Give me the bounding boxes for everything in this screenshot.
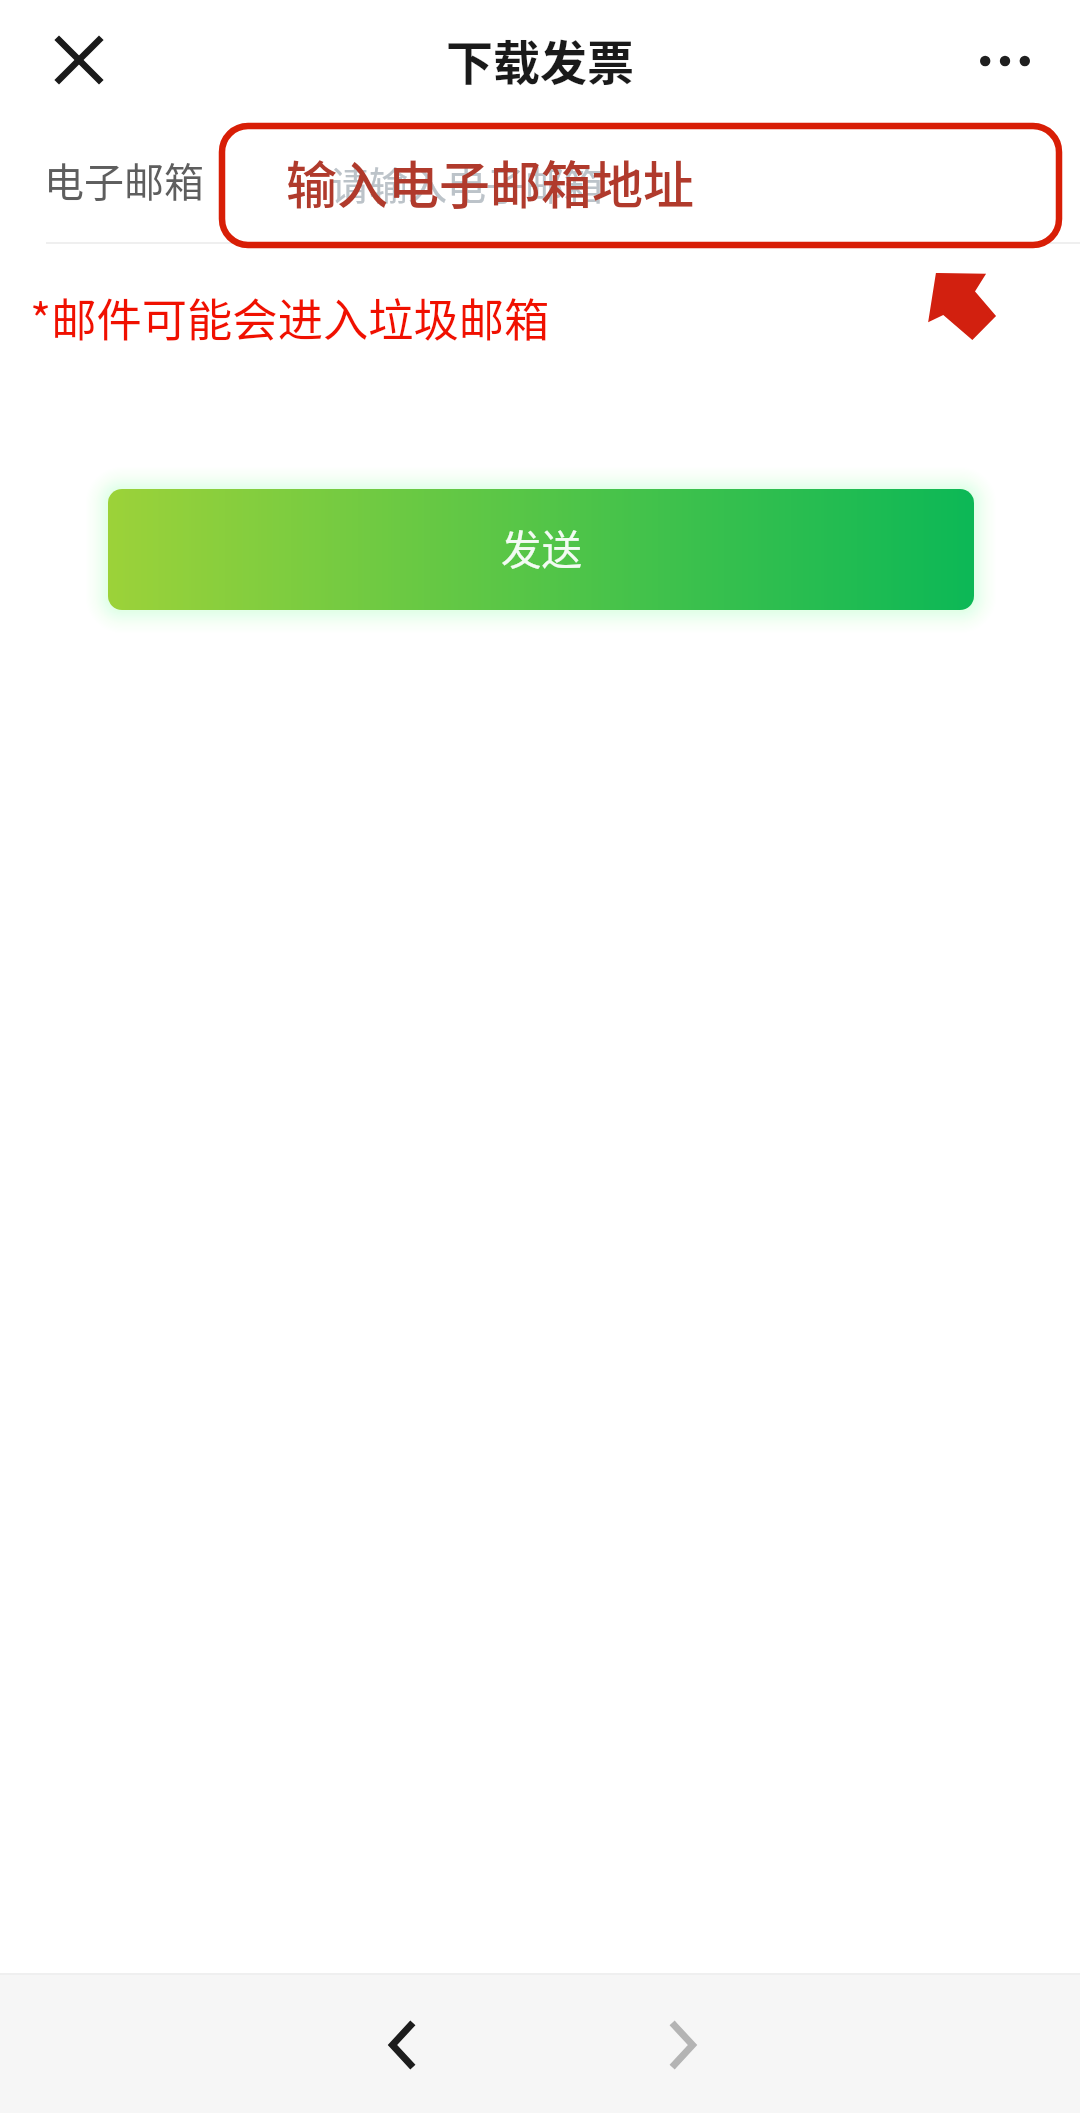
staticText: 下载发票 [446, 25, 634, 93]
button[interactable]: Close [40, 21, 118, 99]
button[interactable]: Forward [627, 1989, 739, 2101]
staticText: 电子邮箱 [44, 151, 204, 209]
staticText: 输入电子邮箱地址 [286, 145, 695, 219]
button[interactable]: More options [966, 21, 1044, 99]
button[interactable]: Back [345, 1989, 457, 2101]
staticText: *邮件可能会进入垃圾邮箱 [30, 284, 550, 350]
staticText: 请输入电子邮箱 [330, 155, 604, 211]
button[interactable]: 发送 [108, 489, 974, 610]
staticText: 发送 [501, 518, 582, 577]
